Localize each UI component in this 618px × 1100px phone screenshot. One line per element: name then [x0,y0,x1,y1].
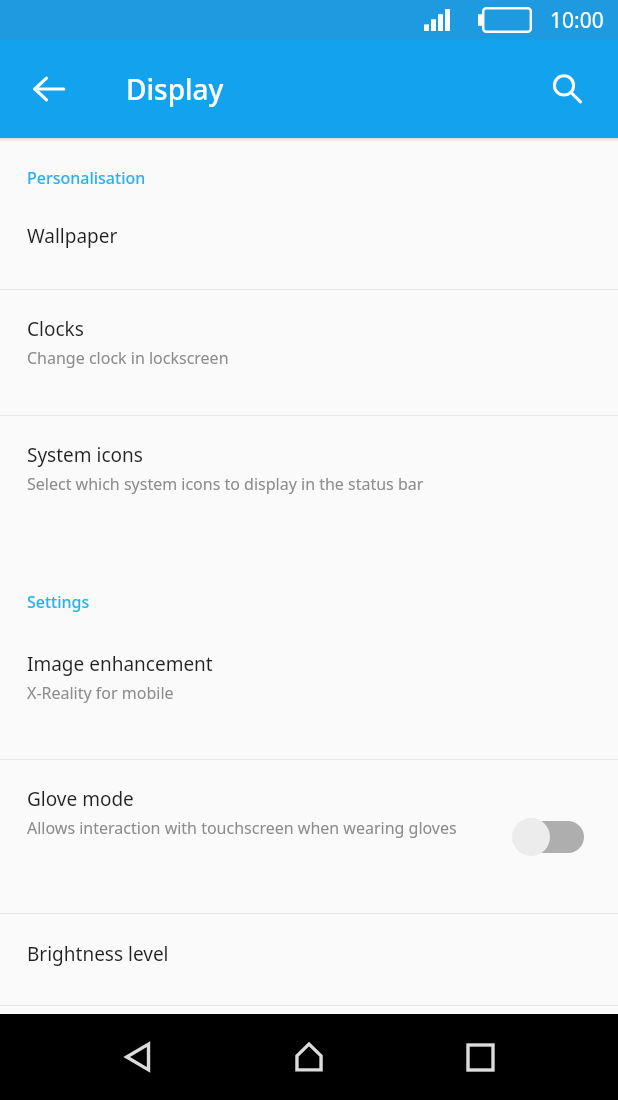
button[interactable]: Home [277,1025,341,1089]
staticText: Display [126,70,224,108]
staticText: Change clock in lockscreen [27,347,572,369]
staticText: Select which system icons to display in … [27,473,572,495]
staticText: Image enhancement [27,651,213,677]
button[interactable]: System icons [0,416,618,567]
staticText: Glove mode [27,786,134,812]
staticText: Personalisation [27,167,146,189]
staticText: Brightness level [27,941,169,967]
staticText: 10:00 [550,6,604,35]
staticText: System icons [27,442,143,468]
staticText: Settings [27,591,90,613]
button[interactable]: Back [20,60,78,118]
button[interactable]: Image enhancement [0,625,618,759]
button[interactable]: Recents [448,1025,512,1089]
button[interactable]: Glove mode [512,814,588,860]
button[interactable]: Back [107,1025,171,1089]
staticText: X-Reality for mobile [27,682,572,704]
button[interactable]: Clocks [0,290,618,415]
staticText: Wallpaper [27,223,118,249]
button[interactable]: Search [538,60,596,118]
button[interactable]: Brightness level [0,914,618,1005]
staticText: Clocks [27,316,84,342]
staticText: Allows interaction with touchscreen when… [27,817,487,839]
button[interactable]: Glove mode [0,760,618,913]
button[interactable]: Wallpaper [0,198,618,289]
